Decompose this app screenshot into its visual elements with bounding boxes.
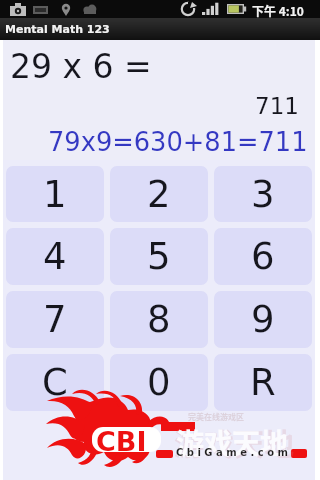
button[interactable]: 8 xyxy=(110,291,208,348)
staticText: 0 xyxy=(147,361,171,404)
button[interactable]: 6 xyxy=(214,228,312,285)
staticText: 9 xyxy=(251,298,275,341)
staticText: 6 xyxy=(251,235,275,278)
staticText: 3 xyxy=(251,173,275,216)
button[interactable]: 2 xyxy=(110,166,208,222)
staticText: 7 xyxy=(43,298,67,341)
staticText: 游戏天地 xyxy=(176,422,289,463)
staticText: 4 xyxy=(43,235,67,278)
button[interactable]: 7 xyxy=(6,291,104,348)
button[interactable]: C xyxy=(6,354,104,411)
button[interactable]: 1 xyxy=(6,166,104,222)
button[interactable]: R xyxy=(214,354,312,411)
button[interactable]: 3 xyxy=(214,166,312,222)
staticText: C b i G a m e . c o m xyxy=(176,447,288,459)
staticText: 8 xyxy=(147,298,171,341)
staticText: 29 x 6 = xyxy=(10,47,152,85)
button[interactable]: 9 xyxy=(214,291,312,348)
staticText: 5 xyxy=(147,235,171,278)
staticText: 下午 4:10 xyxy=(252,2,304,19)
button[interactable]: 0 xyxy=(110,354,208,411)
staticText: 711 xyxy=(255,93,299,120)
staticText: 游戏天地 xyxy=(174,420,294,463)
staticText: C xyxy=(42,361,68,404)
staticText: CBI xyxy=(96,426,147,457)
staticText: 79x9=630+81=711 xyxy=(48,127,308,157)
staticText: 2 xyxy=(147,173,171,216)
staticText: 完美在线游戏区 xyxy=(188,411,244,423)
staticText: R xyxy=(250,361,276,404)
button[interactable]: 4 xyxy=(6,228,104,285)
button[interactable]: 5 xyxy=(110,228,208,285)
staticText: Mental Math 123 xyxy=(5,23,110,36)
staticText: 1 xyxy=(43,173,67,216)
